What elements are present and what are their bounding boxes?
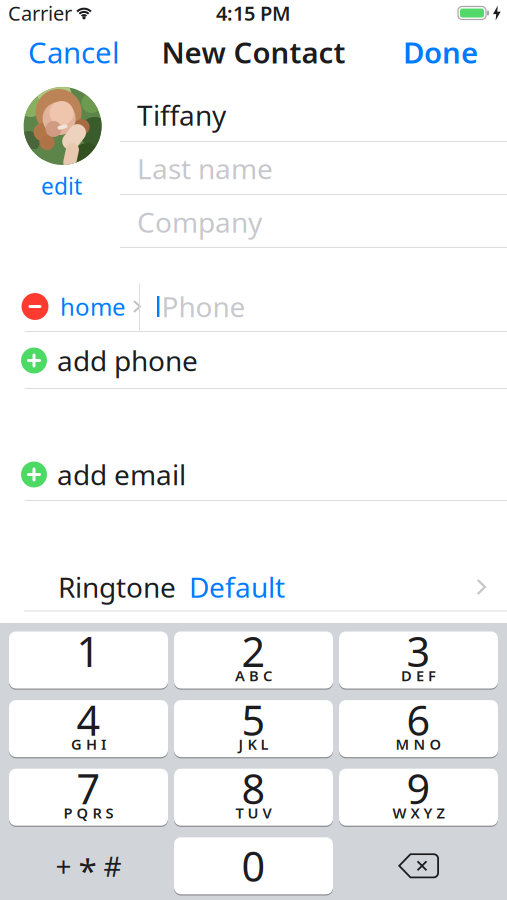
- button[interactable]: Cancel: [28, 30, 148, 74]
- staticText: T U V: [235, 803, 271, 822]
- staticText: edit: [41, 171, 82, 201]
- staticText: 5: [241, 692, 265, 747]
- button[interactable]: 7: [9, 769, 168, 826]
- button[interactable]: 0: [174, 837, 333, 894]
- button[interactable]: 5: [174, 700, 333, 757]
- staticText: Default: [189, 568, 285, 606]
- staticText: P Q R S: [63, 803, 113, 822]
- button[interactable]: add email: [21, 446, 503, 502]
- staticText: 8: [241, 761, 265, 816]
- staticText: W X Y Z: [392, 803, 444, 822]
- staticText: 4: [76, 692, 100, 747]
- button[interactable]: Tiffany: [137, 89, 507, 141]
- button[interactable]: 4: [9, 700, 168, 757]
- button[interactable]: home: [60, 283, 160, 329]
- staticText: A B C: [235, 666, 272, 685]
- button[interactable]: Symbols: [9, 837, 168, 894]
- staticText: G H I: [71, 734, 106, 754]
- staticText: add phone: [57, 342, 198, 379]
- button[interactable]: Done: [358, 30, 478, 74]
- button[interactable]: 3: [339, 631, 498, 688]
- button[interactable]: 9: [339, 769, 498, 826]
- staticText: +: [55, 847, 71, 884]
- button[interactable]: 6: [339, 700, 498, 757]
- staticText: J K L: [238, 734, 268, 754]
- staticText: Cancel: [28, 32, 120, 71]
- staticText: New Contact: [161, 32, 345, 71]
- staticText: home: [60, 291, 126, 322]
- staticText: #: [103, 847, 121, 884]
- staticText: add email: [57, 456, 186, 493]
- button[interactable]: Edit contact photo: [24, 87, 102, 165]
- staticText: Tiffany: [137, 96, 226, 134]
- staticText: 0: [241, 838, 265, 893]
- button[interactable]: Phone: [157, 283, 507, 329]
- button[interactable]: Company: [137, 196, 507, 248]
- staticText: Company: [137, 203, 262, 241]
- button[interactable]: Last name: [137, 142, 507, 194]
- staticText: [86, 666, 90, 685]
- staticText: 9: [406, 761, 430, 816]
- staticText: Last name: [137, 150, 273, 187]
- button[interactable]: Ringtone: [24, 564, 507, 610]
- button[interactable]: Remove phone: [21, 293, 48, 320]
- staticText: Phone: [161, 288, 245, 325]
- staticText: 3: [406, 624, 430, 678]
- staticText: M N O: [395, 734, 441, 754]
- staticText: Carrier: [8, 0, 72, 26]
- button[interactable]: 2: [174, 631, 333, 688]
- staticText: 6: [406, 692, 430, 747]
- button[interactable]: add phone: [21, 332, 503, 388]
- staticText: Done: [403, 32, 478, 71]
- button[interactable]: 1: [9, 631, 168, 688]
- staticText: 1: [76, 624, 100, 678]
- button[interactable]: Delete: [339, 837, 498, 894]
- button[interactable]: edit: [41, 171, 82, 201]
- staticText: 7: [76, 761, 100, 816]
- staticText: 2: [241, 624, 265, 678]
- button[interactable]: 8: [174, 769, 333, 826]
- staticText: *: [78, 848, 96, 892]
- staticText: D E F: [401, 666, 436, 685]
- staticText: 4:15 PM: [216, 0, 291, 26]
- staticText: Ringtone: [58, 568, 176, 606]
